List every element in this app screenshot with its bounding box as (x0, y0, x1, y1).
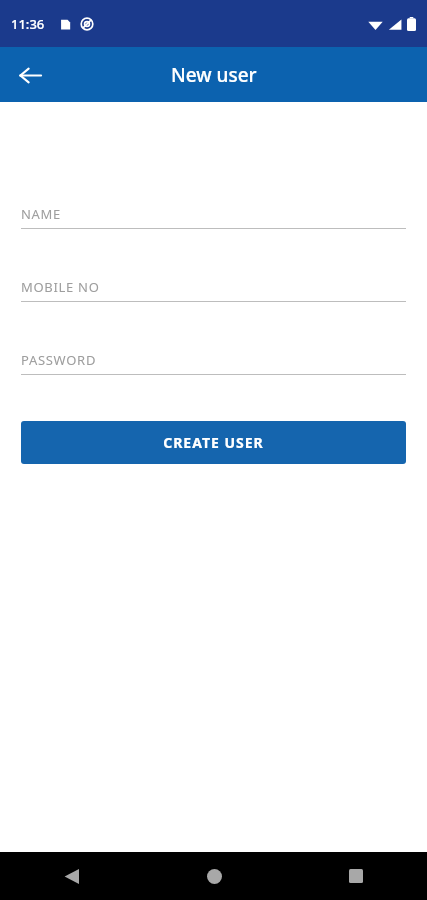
button[interactable]: MOBILE NO (21, 278, 406, 302)
button[interactable]: Home (143, 852, 285, 900)
button[interactable]: NAME (21, 205, 406, 229)
staticText: 11:36 (11, 15, 45, 33)
staticText: NAME (21, 205, 62, 223)
button[interactable]: Recent apps (285, 852, 427, 900)
staticText: MOBILE NO (21, 278, 100, 296)
staticText: New user (171, 62, 257, 88)
button[interactable]: PASSWORD (21, 351, 406, 375)
staticText: CREATE USER (163, 433, 264, 452)
button[interactable]: Back (0, 852, 143, 900)
button[interactable]: CREATE USER (21, 421, 406, 464)
staticText: PASSWORD (21, 351, 97, 369)
button[interactable]: Back (6, 51, 54, 99)
